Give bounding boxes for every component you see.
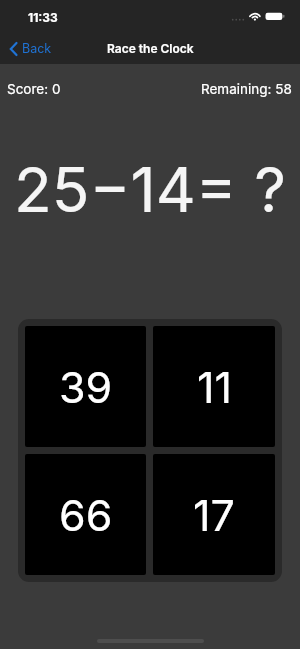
button[interactable]: Back bbox=[0, 36, 60, 61]
staticText: 25−14= ? bbox=[14, 152, 286, 218]
staticText: 66 bbox=[59, 489, 113, 541]
staticText: Remaining: 58 bbox=[201, 81, 292, 97]
staticText: 17 bbox=[193, 489, 235, 541]
staticText: 11:33 bbox=[28, 10, 58, 25]
staticText: 39 bbox=[59, 361, 113, 413]
button[interactable]: 17 bbox=[153, 454, 275, 575]
staticText: Score: 0 bbox=[7, 81, 61, 97]
staticText: Back bbox=[22, 41, 52, 56]
button[interactable]: 66 bbox=[25, 454, 146, 575]
staticText: 11 bbox=[197, 361, 232, 413]
button[interactable]: 39 bbox=[25, 326, 146, 447]
button[interactable]: 11 bbox=[153, 326, 275, 447]
other: Back bbox=[10, 43, 17, 55]
staticText: Race the Clock bbox=[107, 41, 194, 56]
